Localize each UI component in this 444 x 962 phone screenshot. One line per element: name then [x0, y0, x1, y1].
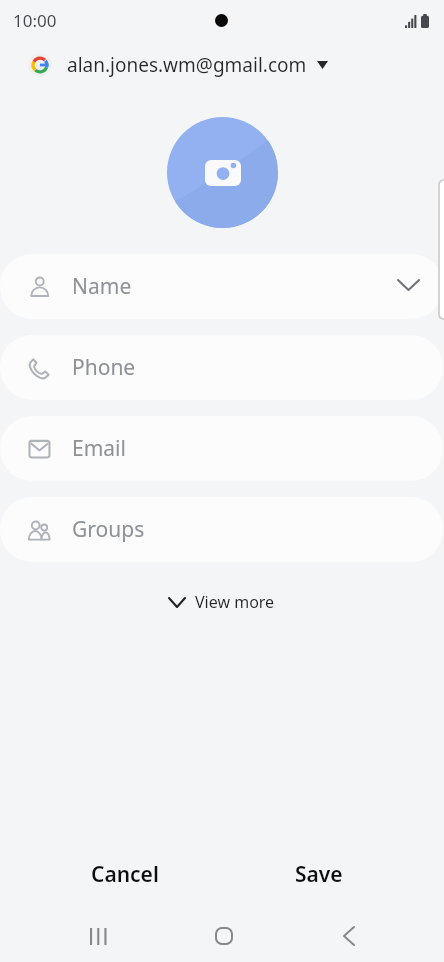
staticText: 10:00 [13, 9, 57, 32]
staticText: Name [72, 272, 132, 301]
staticText: Phone [72, 353, 136, 382]
staticText: Cancel [91, 860, 159, 889]
button[interactable]: Groups [0, 497, 443, 562]
button[interactable]: Cancel [61, 852, 189, 897]
button[interactable]: Home [183, 910, 264, 962]
staticText: Email [72, 434, 126, 463]
button[interactable]: alan.jones.wm@gmail.com [0, 44, 444, 86]
button[interactable]: Back [308, 910, 389, 962]
button[interactable]: Add photo [167, 117, 278, 228]
button[interactable]: Phone [0, 335, 443, 400]
button[interactable]: Recent apps [58, 910, 139, 962]
button[interactable]: Name [0, 254, 443, 319]
staticText: Save [295, 860, 343, 889]
staticText: alan.jones.wm@gmail.com [67, 52, 307, 78]
staticText: View more [195, 591, 275, 613]
staticText: Groups [72, 515, 145, 544]
button[interactable]: Email [0, 416, 443, 481]
button[interactable]: View more [155, 583, 289, 621]
button[interactable]: Save [255, 852, 383, 897]
